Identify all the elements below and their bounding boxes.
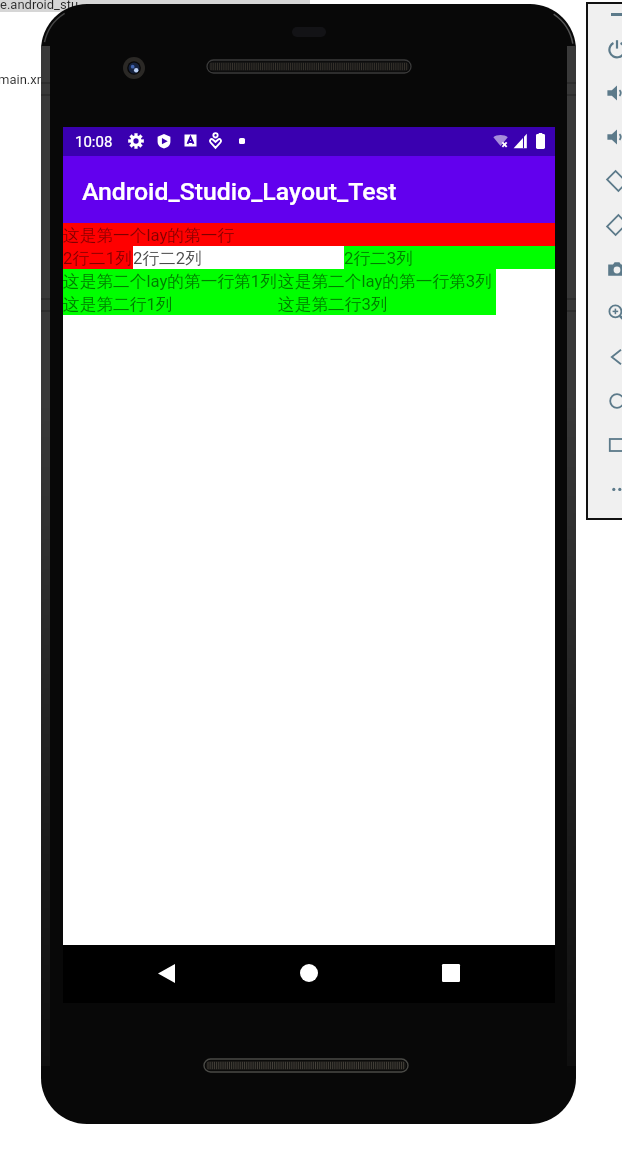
button[interactable]: Back [600, 335, 622, 379]
staticText: main.xm [0, 72, 49, 87]
staticText: 10:08 [75, 133, 113, 151]
button[interactable]: Home [292, 956, 326, 990]
staticText: 这是第二个lay的第一行第1列 [63, 271, 277, 292]
button[interactable]: Overview [600, 423, 622, 467]
staticText: 2行二1列 [63, 248, 132, 269]
button[interactable]: Home [600, 379, 622, 423]
button[interactable]: Zoom [600, 291, 622, 335]
staticText: 这是第二行3列 [278, 294, 388, 315]
button[interactable]: Rotate left [600, 159, 622, 203]
button[interactable]: Back [149, 956, 183, 990]
staticText: 这是第二个lay的第一行第3列 [278, 271, 492, 292]
button[interactable]: More [600, 467, 622, 511]
button[interactable]: Volume down [600, 115, 622, 159]
staticText: 这是第一个lay的第一行 [63, 225, 235, 246]
button[interactable]: Screenshot [600, 247, 622, 291]
staticText: Android_Studio_Layout_Test [82, 177, 397, 206]
staticText: 2行二3列 [344, 248, 413, 269]
staticText: e.android_stu [0, 0, 79, 12]
button[interactable]: Rotate right [600, 203, 622, 247]
staticText: 这是第二行1列 [63, 294, 173, 315]
button[interactable]: Volume up [600, 71, 622, 115]
staticText: 2行二2列 [133, 248, 202, 269]
button[interactable]: Recents [434, 956, 468, 990]
button[interactable]: Power [600, 27, 622, 71]
